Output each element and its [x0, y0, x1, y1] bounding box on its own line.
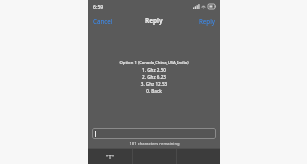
staticText: Reply: [145, 16, 163, 25]
staticText: 181 characters remaining: [129, 141, 180, 147]
button[interactable]: Suggestion 3: [177, 148, 220, 164]
staticText: 6:59: [93, 3, 104, 10]
button[interactable]: Suggestion T: [88, 148, 132, 164]
staticText: Option 1 (Canada,China,USA,India): [88, 60, 220, 66]
button[interactable]: [92, 128, 216, 139]
button[interactable]: Cancel: [88, 14, 118, 28]
staticText: "T": [106, 153, 114, 160]
staticText: 0. Back: [88, 88, 220, 94]
staticText: Reply: [199, 17, 215, 25]
staticText: Cancel: [93, 17, 113, 25]
staticText: 2. Ghz 6.23: [88, 74, 220, 80]
button[interactable]: Reply: [194, 14, 220, 28]
staticText: 3. Ghz 12.53: [88, 81, 220, 87]
staticText: 1. Ghz 2.50: [88, 67, 220, 73]
button[interactable]: Suggestion 2: [133, 148, 176, 164]
